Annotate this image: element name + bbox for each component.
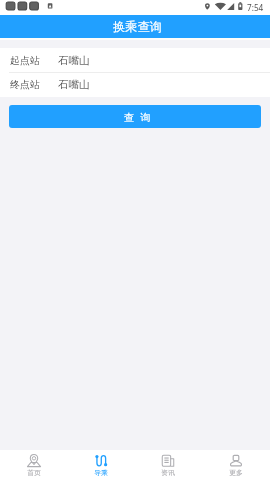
staticText: 换乘查询 [113, 19, 162, 34]
button[interactable]: 查询 [9, 105, 261, 128]
staticText: 查 询 [124, 110, 153, 124]
staticText: 首页 [27, 468, 41, 477]
button[interactable]: 更多 [202, 450, 270, 480]
staticText: 资讯 [161, 468, 175, 477]
staticText: 终点站 [10, 78, 40, 90]
staticText: 起点站 [10, 54, 40, 66]
staticText: 7:54 [247, 2, 264, 13]
staticText: 石嘴山 [58, 54, 90, 67]
button[interactable]: 起点站 [0, 48, 270, 72]
staticText: 更多 [229, 468, 243, 477]
button[interactable]: 资讯 [134, 450, 202, 480]
button[interactable]: 导乘 [67, 450, 134, 480]
button[interactable]: 终点站 [0, 73, 270, 97]
staticText: 导乘 [94, 468, 108, 477]
button[interactable]: 首页 [0, 450, 67, 480]
staticText: 石嘴山 [58, 78, 90, 91]
